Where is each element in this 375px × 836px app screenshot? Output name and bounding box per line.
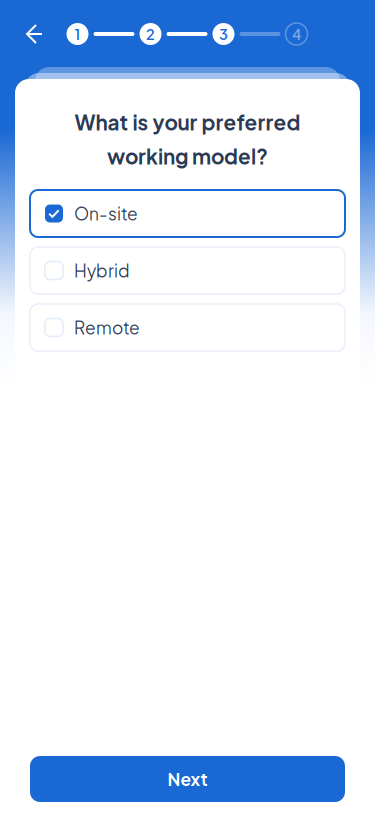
button[interactable]: Back [22, 20, 50, 48]
staticText: 1 [74, 25, 80, 43]
button[interactable]: Next [30, 756, 345, 802]
staticText: Remote [74, 317, 140, 338]
staticText: 4 [292, 25, 301, 43]
staticText: What is your preferred [74, 109, 300, 135]
staticText: working model? [107, 143, 268, 169]
button[interactable]: Remote [30, 304, 345, 351]
button[interactable]: On-site [30, 190, 345, 237]
staticText: 3 [219, 25, 228, 43]
staticText: 2 [146, 25, 155, 43]
button[interactable]: Hybrid [30, 247, 345, 294]
staticText: Next [167, 768, 207, 790]
staticText: Hybrid [74, 260, 130, 281]
staticText: On-site [74, 203, 138, 224]
